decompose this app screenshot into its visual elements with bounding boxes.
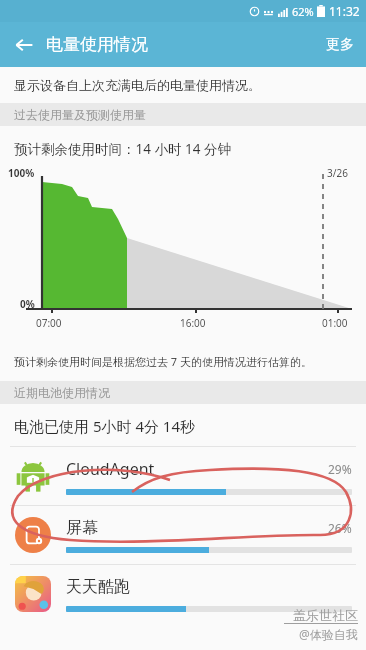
staticText: 盖乐世社区 [293,607,358,623]
staticText: 11:32 [329,3,360,19]
staticText: 3/26 [327,166,348,180]
staticText: 屏幕 [66,518,328,538]
staticText: 100% [8,166,35,180]
staticText: 天天酷跑 [66,577,352,597]
staticText: 29% [328,461,352,477]
staticText: 显示设备自上次充满电后的电量使用情况。 [14,77,261,93]
staticText: 预计剩余使用时间：14 小时 14 分钟 [14,140,231,158]
staticText: @体验自我 [299,626,358,642]
button[interactable]: CloudAgent [0,447,366,505]
button[interactable]: 更多 [314,26,366,64]
button[interactable]: Back [6,27,42,63]
staticText: 近期电池使用情况 [14,385,110,400]
staticText: 电池已使用 5小时 4分 14秒 [14,416,196,436]
staticText: 62% [292,4,314,19]
staticText: 26% [328,520,352,536]
button[interactable]: 天天酷跑 [0,565,366,623]
staticText: 电量使用情况 [46,34,148,55]
staticText: 过去使用量及预测使用量 [14,107,146,122]
button[interactable]: 屏幕 [0,506,366,564]
staticText: 更多 [326,36,354,54]
staticText: 0% [20,297,35,311]
staticText: 01:00 [322,316,348,330]
staticText: CloudAgent [66,458,328,480]
staticText: 16:00 [180,316,206,330]
staticText: 预计剩余使用时间是根据您过去 7 天的使用情况进行估算的。 [14,354,313,369]
staticText: 07:00 [36,316,62,330]
